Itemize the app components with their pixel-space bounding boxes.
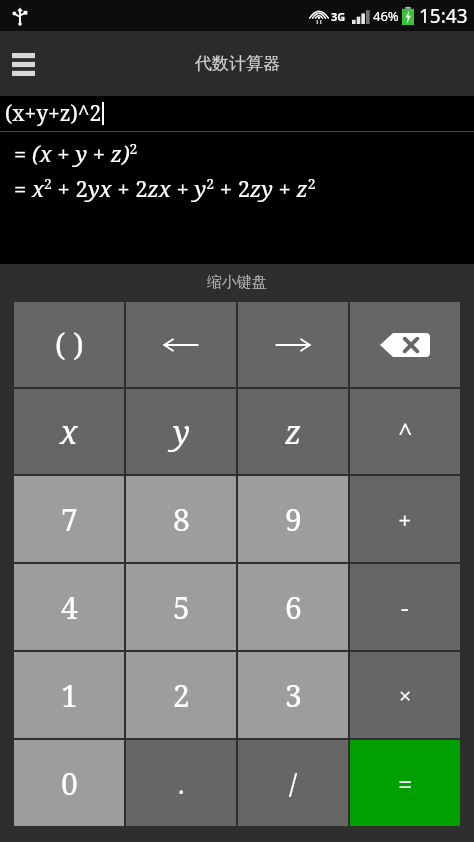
button[interactable]: - — [350, 564, 460, 650]
button[interactable]: 4 — [14, 564, 124, 650]
staticText: (x+y+z)^2 — [5, 99, 102, 128]
staticText: 3 — [285, 675, 302, 716]
staticText: 缩小键盘 — [207, 273, 267, 292]
staticText: 5 — [173, 587, 190, 628]
button[interactable]: = — [350, 740, 460, 826]
button[interactable]: 9 — [238, 476, 348, 562]
staticText: = (x + y + z)2 — [14, 138, 138, 168]
staticText: 7 — [61, 499, 78, 540]
button[interactable]: 缩小键盘 — [0, 264, 474, 301]
button[interactable]: Backspace — [350, 302, 460, 387]
button[interactable]: z — [238, 389, 348, 474]
staticText: ( ) — [55, 324, 84, 365]
staticText: 3G — [331, 9, 346, 24]
button[interactable]: y — [126, 389, 236, 474]
button[interactable]: Menu — [6, 47, 40, 81]
button[interactable]: 7 — [14, 476, 124, 562]
button[interactable]: + — [350, 476, 460, 562]
staticText: 46% — [373, 7, 399, 25]
button[interactable]: 2 — [126, 652, 236, 738]
button[interactable]: x — [14, 389, 124, 474]
button[interactable]: 6 — [238, 564, 348, 650]
button[interactable]: Left — [126, 302, 236, 387]
staticText: x — [60, 410, 78, 454]
staticText: = — [398, 766, 413, 801]
staticText: - — [401, 591, 409, 624]
staticText: z — [285, 410, 302, 454]
staticText: 0 — [61, 763, 78, 804]
button[interactable]: Right — [238, 302, 348, 387]
button[interactable]: 3 — [238, 652, 348, 738]
button[interactable]: 5 — [126, 564, 236, 650]
staticText: y — [173, 410, 190, 454]
staticText: 6 — [285, 587, 302, 628]
staticText: + — [398, 503, 412, 536]
button[interactable]: ^ — [350, 389, 460, 474]
staticText: 15:43 — [419, 3, 468, 29]
button[interactable]: ( ) — [14, 302, 124, 387]
button[interactable]: . — [126, 740, 236, 826]
staticText: ^ — [398, 414, 413, 449]
staticText: 8 — [173, 499, 190, 540]
staticText: 4 — [61, 587, 78, 628]
staticText: . — [178, 766, 185, 801]
staticText: 2 — [173, 675, 190, 716]
staticText: 9 — [285, 499, 302, 540]
button[interactable]: 1 — [14, 652, 124, 738]
button[interactable]: 0 — [14, 740, 124, 826]
staticText: × — [399, 680, 412, 710]
staticText: 1 — [61, 675, 78, 716]
staticText: 代数计算器 — [195, 53, 280, 74]
staticText: = x2 + 2yx + 2zx + y2 + 2zy + z2 — [14, 173, 316, 203]
button[interactable]: × — [350, 652, 460, 738]
button[interactable]: 8 — [126, 476, 236, 562]
button[interactable]: / — [238, 740, 348, 826]
staticText: / — [289, 764, 298, 802]
